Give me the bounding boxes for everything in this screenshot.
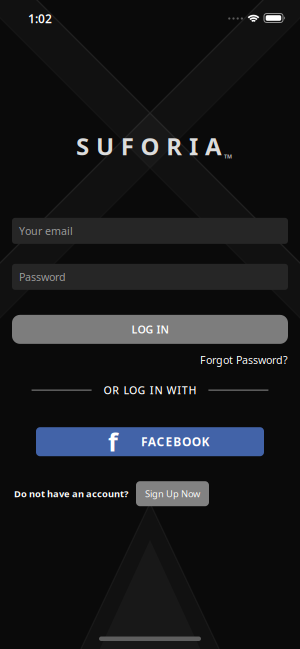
staticText: Your email — [19, 224, 73, 238]
staticText: OR LOG IN WITH — [104, 383, 196, 397]
button[interactable]: LOG IN — [12, 315, 288, 344]
button[interactable]: Password — [12, 264, 288, 290]
staticText: FACEBOOK — [141, 434, 210, 450]
staticText: TM — [224, 153, 232, 160]
staticText: LOG IN — [131, 322, 168, 336]
staticText: SUFORIA — [76, 130, 222, 162]
staticText: f — [108, 425, 118, 458]
staticText: Do not have an account? — [14, 487, 128, 500]
button[interactable]: Your email — [12, 218, 288, 244]
staticText: 1:02 — [28, 10, 52, 26]
button[interactable]: Sign Up Now — [136, 481, 209, 506]
staticText: Sign Up Now — [145, 487, 200, 500]
button[interactable]: Forgot Password? — [200, 353, 288, 367]
staticText: Forgot Password? — [200, 353, 288, 367]
staticText: Password — [19, 270, 66, 284]
button[interactable]: f — [36, 427, 264, 456]
